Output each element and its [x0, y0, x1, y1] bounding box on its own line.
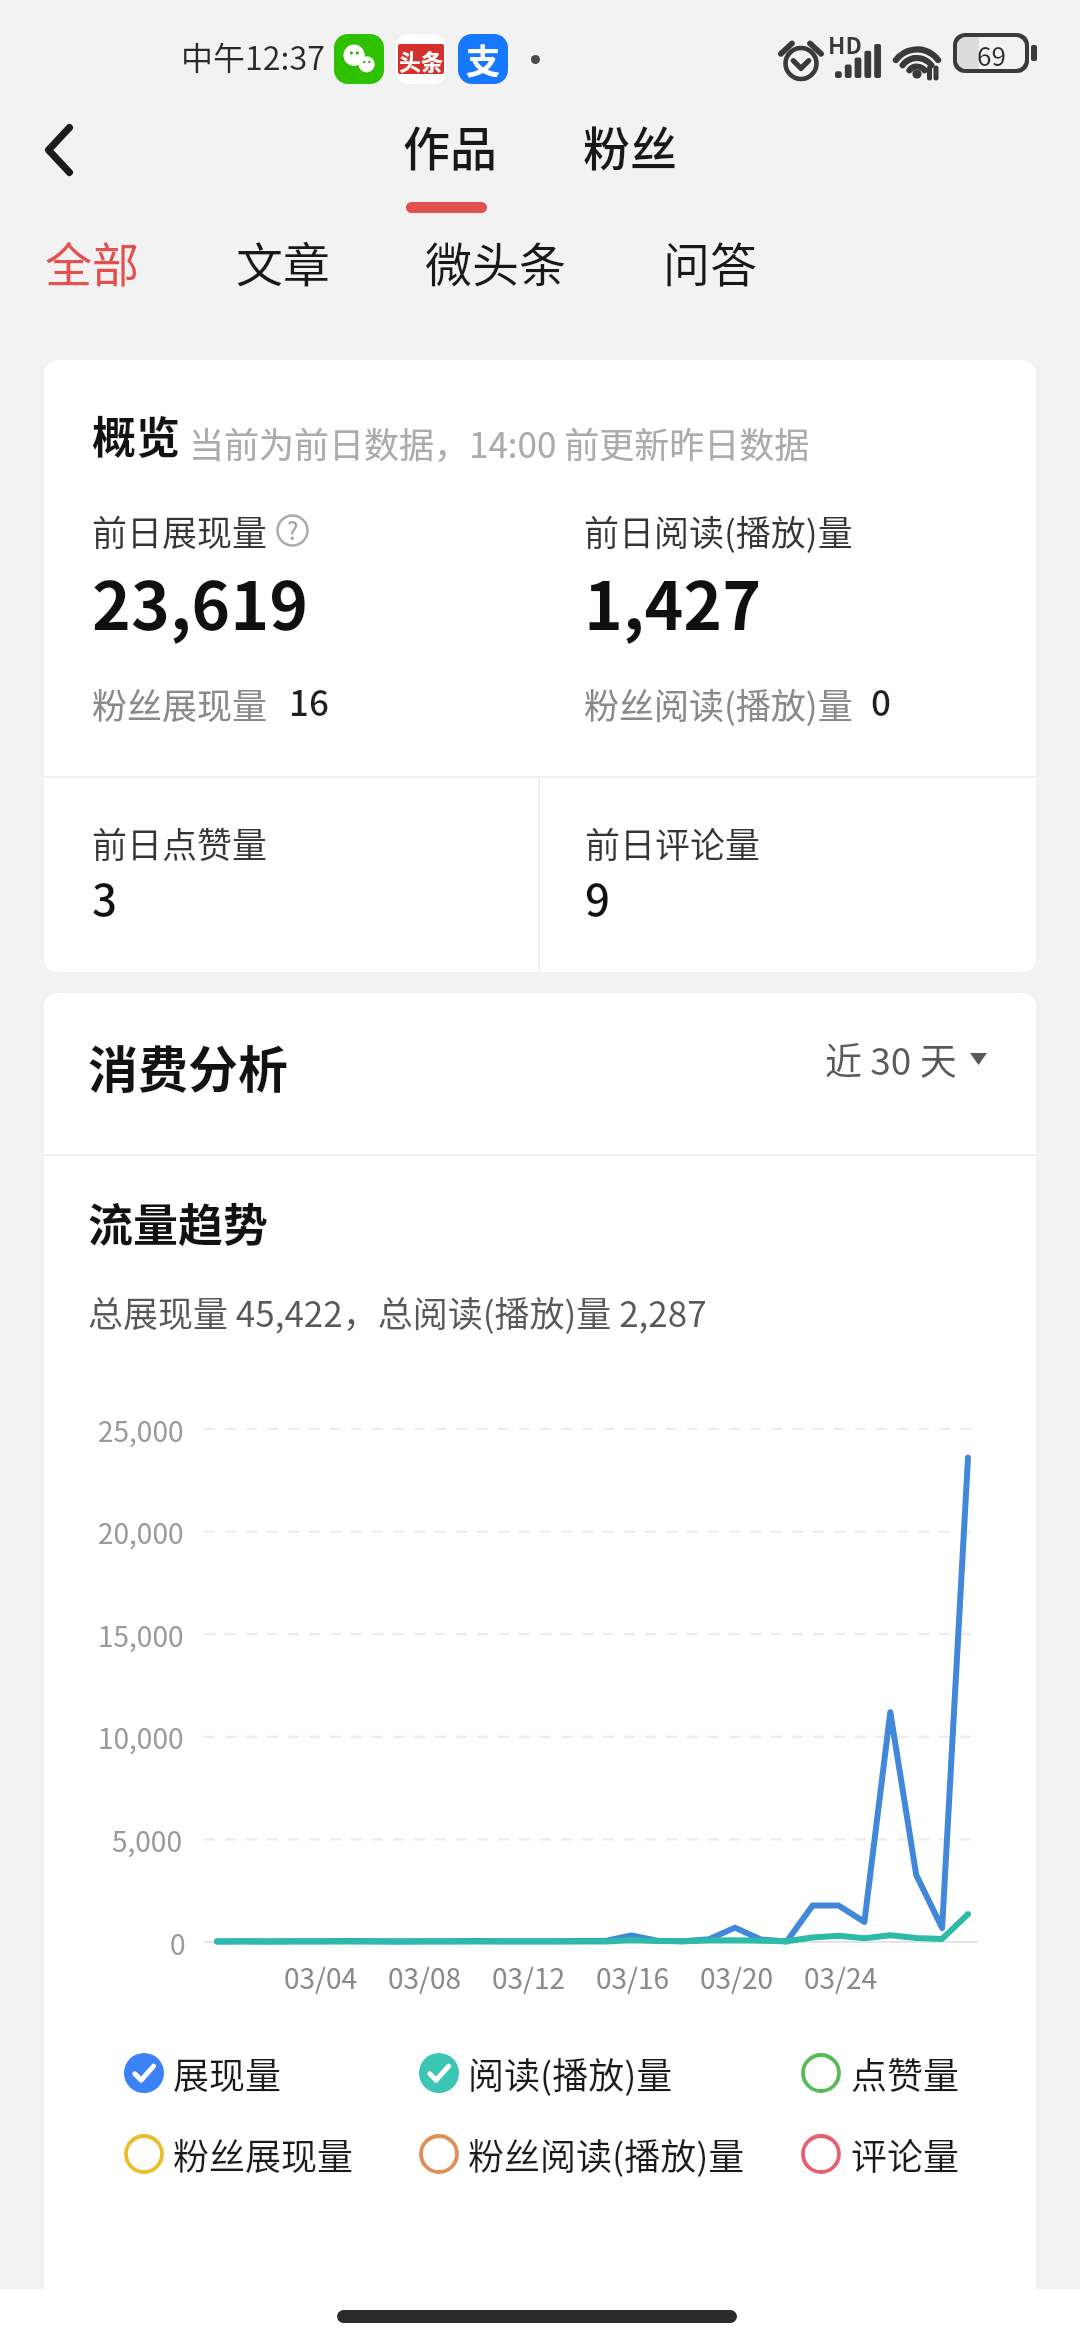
staticText: 粉丝展现量	[92, 678, 268, 729]
staticText: 粉丝展现量	[173, 2128, 354, 2180]
staticText: 粉丝阅读(播放)量	[584, 678, 853, 729]
button[interactable]: 问答	[658, 233, 763, 295]
staticText: 0	[170, 1923, 186, 1964]
staticText: 9	[585, 865, 611, 929]
staticText: 评论量	[851, 2128, 960, 2180]
staticText: ?	[287, 512, 299, 547]
staticText: 全部	[45, 227, 139, 289]
staticText: 阅读(播放)量	[468, 2047, 673, 2099]
staticText: 10,000	[98, 1717, 184, 1758]
staticText: 粉丝	[583, 111, 677, 177]
button[interactable]: Help	[270, 508, 315, 553]
staticText: 5,000	[112, 1820, 182, 1861]
staticText: 展现量	[173, 2047, 282, 2099]
staticText: 03/20	[700, 1957, 774, 1998]
button[interactable]: 文章	[231, 233, 336, 295]
staticText: 03/08	[388, 1957, 462, 1998]
staticText: 03/16	[596, 1957, 670, 1998]
staticText: 总展现量 45,422，总阅读(播放)量 2,287	[88, 1286, 707, 1337]
staticText: 支	[466, 35, 500, 84]
staticText: 前日阅读(播放)量	[584, 505, 853, 556]
staticText: 头条	[399, 44, 444, 74]
staticText: 03/12	[492, 1957, 566, 1998]
button[interactable]: 近 30 天	[792, 1018, 987, 1100]
staticText: HD	[828, 27, 862, 60]
staticText: 前日评论量	[585, 817, 761, 868]
staticText: 微头条	[425, 227, 566, 289]
staticText: 69	[977, 37, 1006, 68]
staticText: 消费分析	[88, 1030, 288, 1102]
button[interactable]: 全部	[40, 233, 145, 295]
staticText: 25,000	[98, 1410, 184, 1451]
button[interactable]: Back	[14, 105, 104, 195]
staticText: 03/24	[804, 1957, 878, 1998]
staticText: 前日点赞量	[92, 817, 268, 868]
staticText: 当前为前日数据，14:00 前更新昨日数据	[189, 417, 810, 468]
staticText: 粉丝阅读(播放)量	[468, 2128, 745, 2180]
staticText: 近 30 天	[825, 1032, 957, 1086]
staticText: 20,000	[98, 1512, 184, 1553]
staticText: 3	[92, 865, 118, 929]
button[interactable]: 展现量	[124, 2043, 282, 2103]
staticText: 15,000	[98, 1615, 184, 1656]
staticText: 概览	[92, 403, 180, 467]
staticText: 点赞量	[851, 2047, 960, 2099]
staticText: 23,619	[92, 553, 309, 649]
staticText: 16	[289, 675, 329, 726]
button[interactable]: 粉丝	[578, 112, 678, 178]
button[interactable]: 微头条	[420, 233, 570, 295]
staticText: 03/04	[284, 1957, 358, 1998]
staticText: 文章	[236, 227, 330, 289]
button[interactable]: 粉丝展现量	[124, 2124, 354, 2184]
staticText: 1,427	[584, 553, 762, 649]
button[interactable]: 阅读(播放)量	[419, 2043, 673, 2103]
staticText: 问答	[663, 227, 757, 289]
button[interactable]: 评论量	[801, 2124, 960, 2184]
button[interactable]: 点赞量	[801, 2043, 960, 2103]
staticText: 0	[871, 675, 891, 726]
button[interactable]: 粉丝阅读(播放)量	[419, 2124, 745, 2184]
staticText: 作品	[403, 111, 497, 179]
staticText: 流量趋势	[88, 1190, 269, 1255]
staticText: 前日展现量	[92, 505, 268, 556]
button[interactable]: 作品	[398, 112, 498, 217]
staticText: 中午12:37	[181, 33, 325, 79]
